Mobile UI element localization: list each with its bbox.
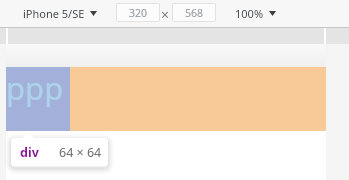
button[interactable]: 100% — [235, 0, 276, 27]
staticText: 64 × 64 — [59, 144, 102, 161]
button[interactable]: 568 — [172, 3, 216, 22]
staticText: iPhone 5/SE — [23, 6, 85, 21]
staticText: × — [161, 5, 170, 24]
staticText: 100% — [235, 6, 264, 21]
button[interactable]: 320 — [116, 3, 160, 22]
button[interactable]: iPhone 5/SE — [23, 0, 97, 27]
staticText: 320 — [129, 6, 148, 20]
staticText: div — [20, 144, 39, 161]
staticText: 568 — [185, 6, 204, 20]
staticText: ppp — [6, 67, 64, 109]
button[interactable]: Element info div 64 by 64 — [0, 126, 120, 178]
